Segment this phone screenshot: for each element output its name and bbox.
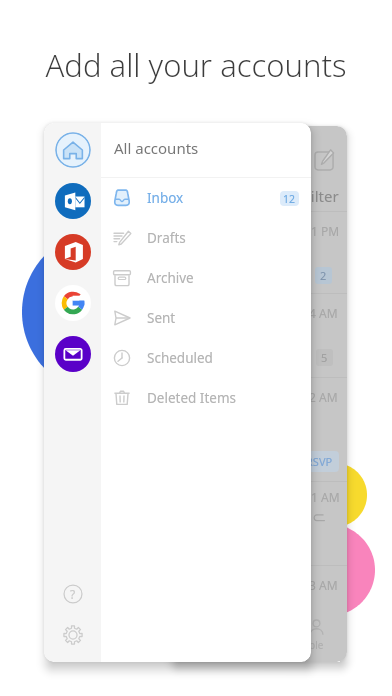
staticText: Deleted Items [147,389,237,407]
staticText: 2 AM [309,389,338,405]
staticText: 2 [320,268,327,283]
button[interactable]: Office account [55,234,91,270]
button[interactable]: Drafts [101,218,311,258]
button[interactable]: Yahoo account [55,336,91,372]
staticText: Drafts [147,229,186,247]
staticText: Archive [147,269,194,287]
staticText: Scheduled [147,349,213,367]
staticText: Inbox [147,189,184,207]
button[interactable]: Google account [55,285,91,321]
button[interactable]: Settings [60,622,86,648]
button[interactable]: Archive [101,258,311,298]
staticText: 3 AM [309,577,338,593]
staticText: All accounts [114,138,199,158]
button[interactable]: All accounts [101,123,311,177]
staticText: 1 AM [311,489,340,505]
staticText: 4 AM [309,305,338,321]
staticText: ople [303,638,324,652]
button[interactable]: All accounts [55,132,91,168]
staticText: ? [70,586,76,602]
button[interactable]: Inbox [101,178,311,218]
staticText: 1 PM [311,223,340,239]
staticText: Sent [147,309,176,327]
button[interactable]: Scheduled [101,338,311,378]
button[interactable]: Deleted Items [101,378,311,418]
staticText: Add all your accounts [0,44,392,86]
staticText: 12 [283,192,296,206]
button[interactable]: Outlook account [55,183,91,219]
button[interactable]: Help [60,581,86,607]
staticText: 5 [321,350,328,365]
staticText: RSVP [306,454,333,469]
staticText: Filter [303,186,339,206]
button[interactable]: Sent [101,298,311,338]
